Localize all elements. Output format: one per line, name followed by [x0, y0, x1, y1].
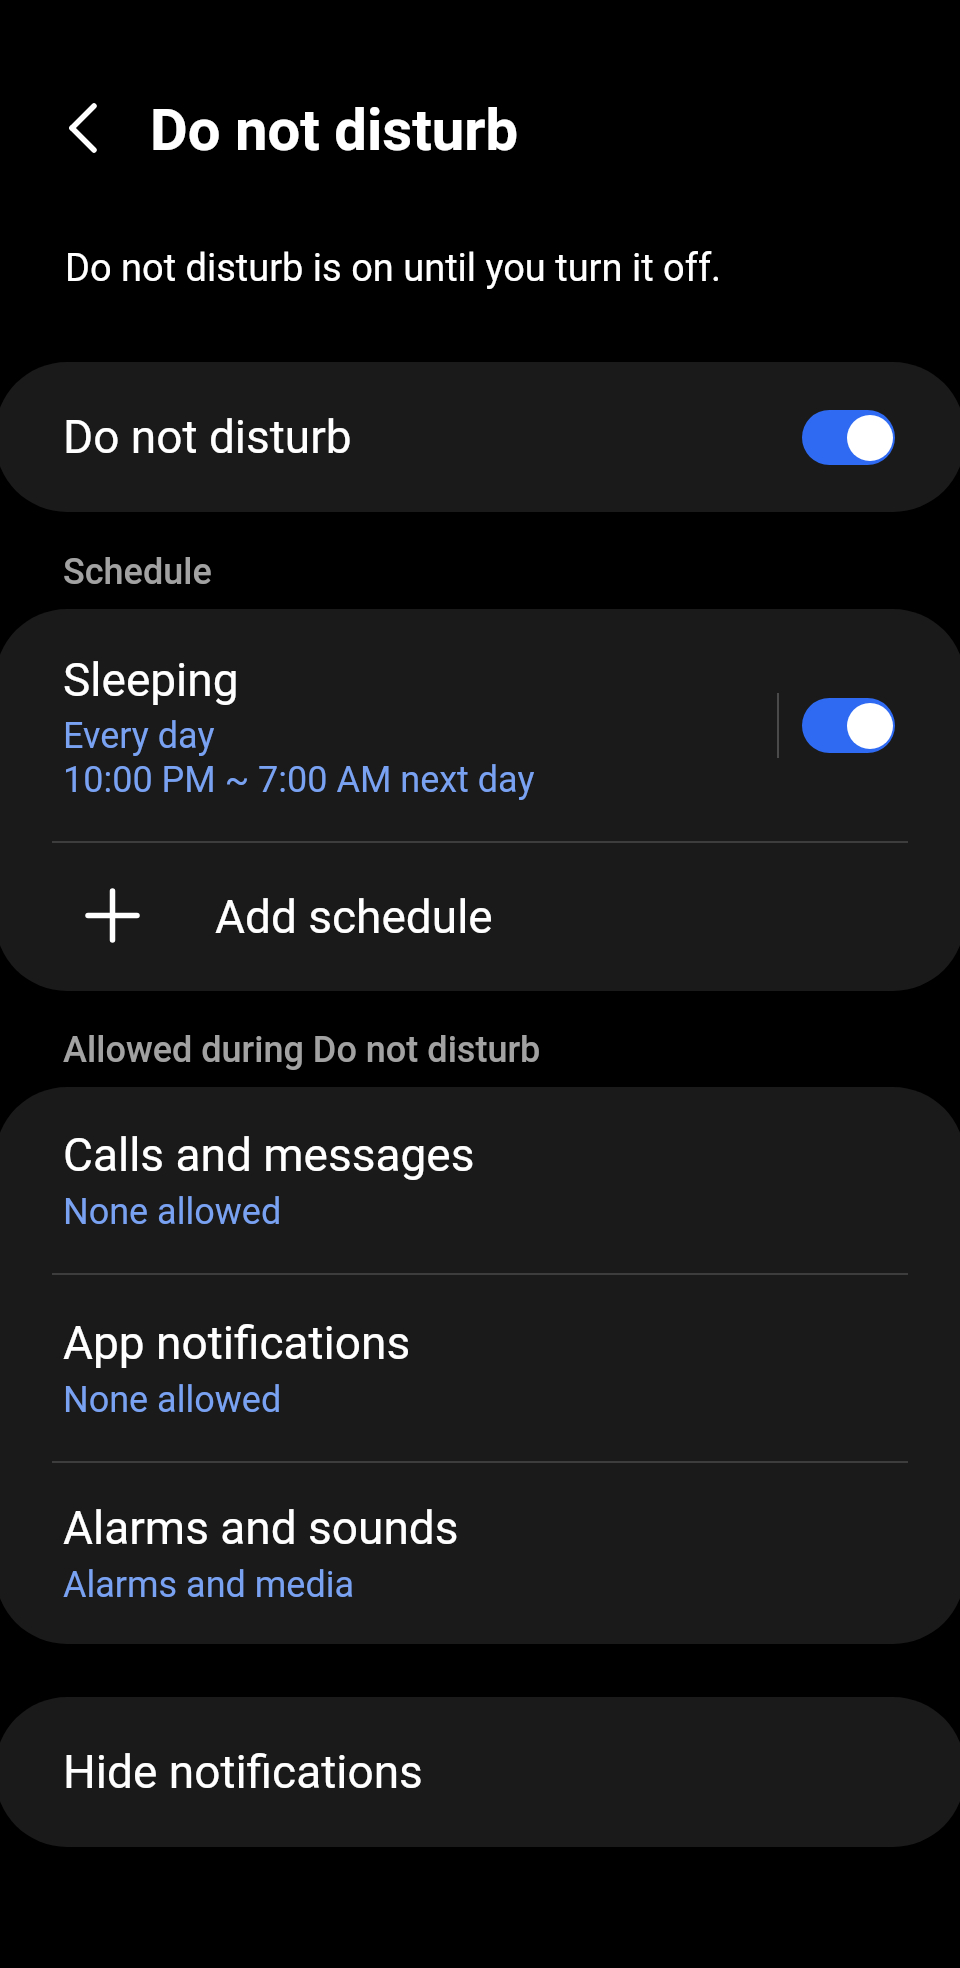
staticText: App notifications [63, 1316, 411, 1370]
staticText: Do not disturb [63, 410, 352, 464]
staticText: Schedule [63, 551, 212, 593]
staticText: Allowed during Do not disturb [63, 1029, 541, 1071]
button[interactable]: Navigate up [47, 92, 119, 164]
staticText: Every day [63, 713, 215, 757]
staticText: Calls and messages [63, 1128, 475, 1182]
button[interactable]: App notifications [0, 1275, 960, 1461]
staticText: Alarms and media [63, 1562, 355, 1606]
button[interactable]: Hide notifications [0, 1697, 960, 1847]
button[interactable]: Calls and messages [0, 1087, 960, 1273]
staticText: None allowed [63, 1377, 282, 1421]
staticText: 10:00 PM ~ 7:00 AM next day [63, 757, 535, 801]
button[interactable]: Add schedule [0, 843, 960, 991]
staticText: Hide notifications [63, 1745, 423, 1799]
button[interactable]: Toggle switch, on [802, 410, 895, 465]
staticText: Alarms and sounds [63, 1501, 459, 1555]
button[interactable]: Alarms and sounds [0, 1463, 960, 1644]
button[interactable]: Do not disturb [0, 362, 960, 512]
staticText: None allowed [63, 1189, 282, 1233]
staticText: Do not disturb is on until you turn it o… [65, 246, 722, 291]
staticText: Do not disturb [150, 96, 519, 164]
button[interactable]: Toggle switch, on [802, 698, 895, 753]
button[interactable]: Sleeping [0, 609, 960, 841]
staticText: Sleeping [63, 653, 239, 707]
staticText: Add schedule [215, 890, 493, 944]
